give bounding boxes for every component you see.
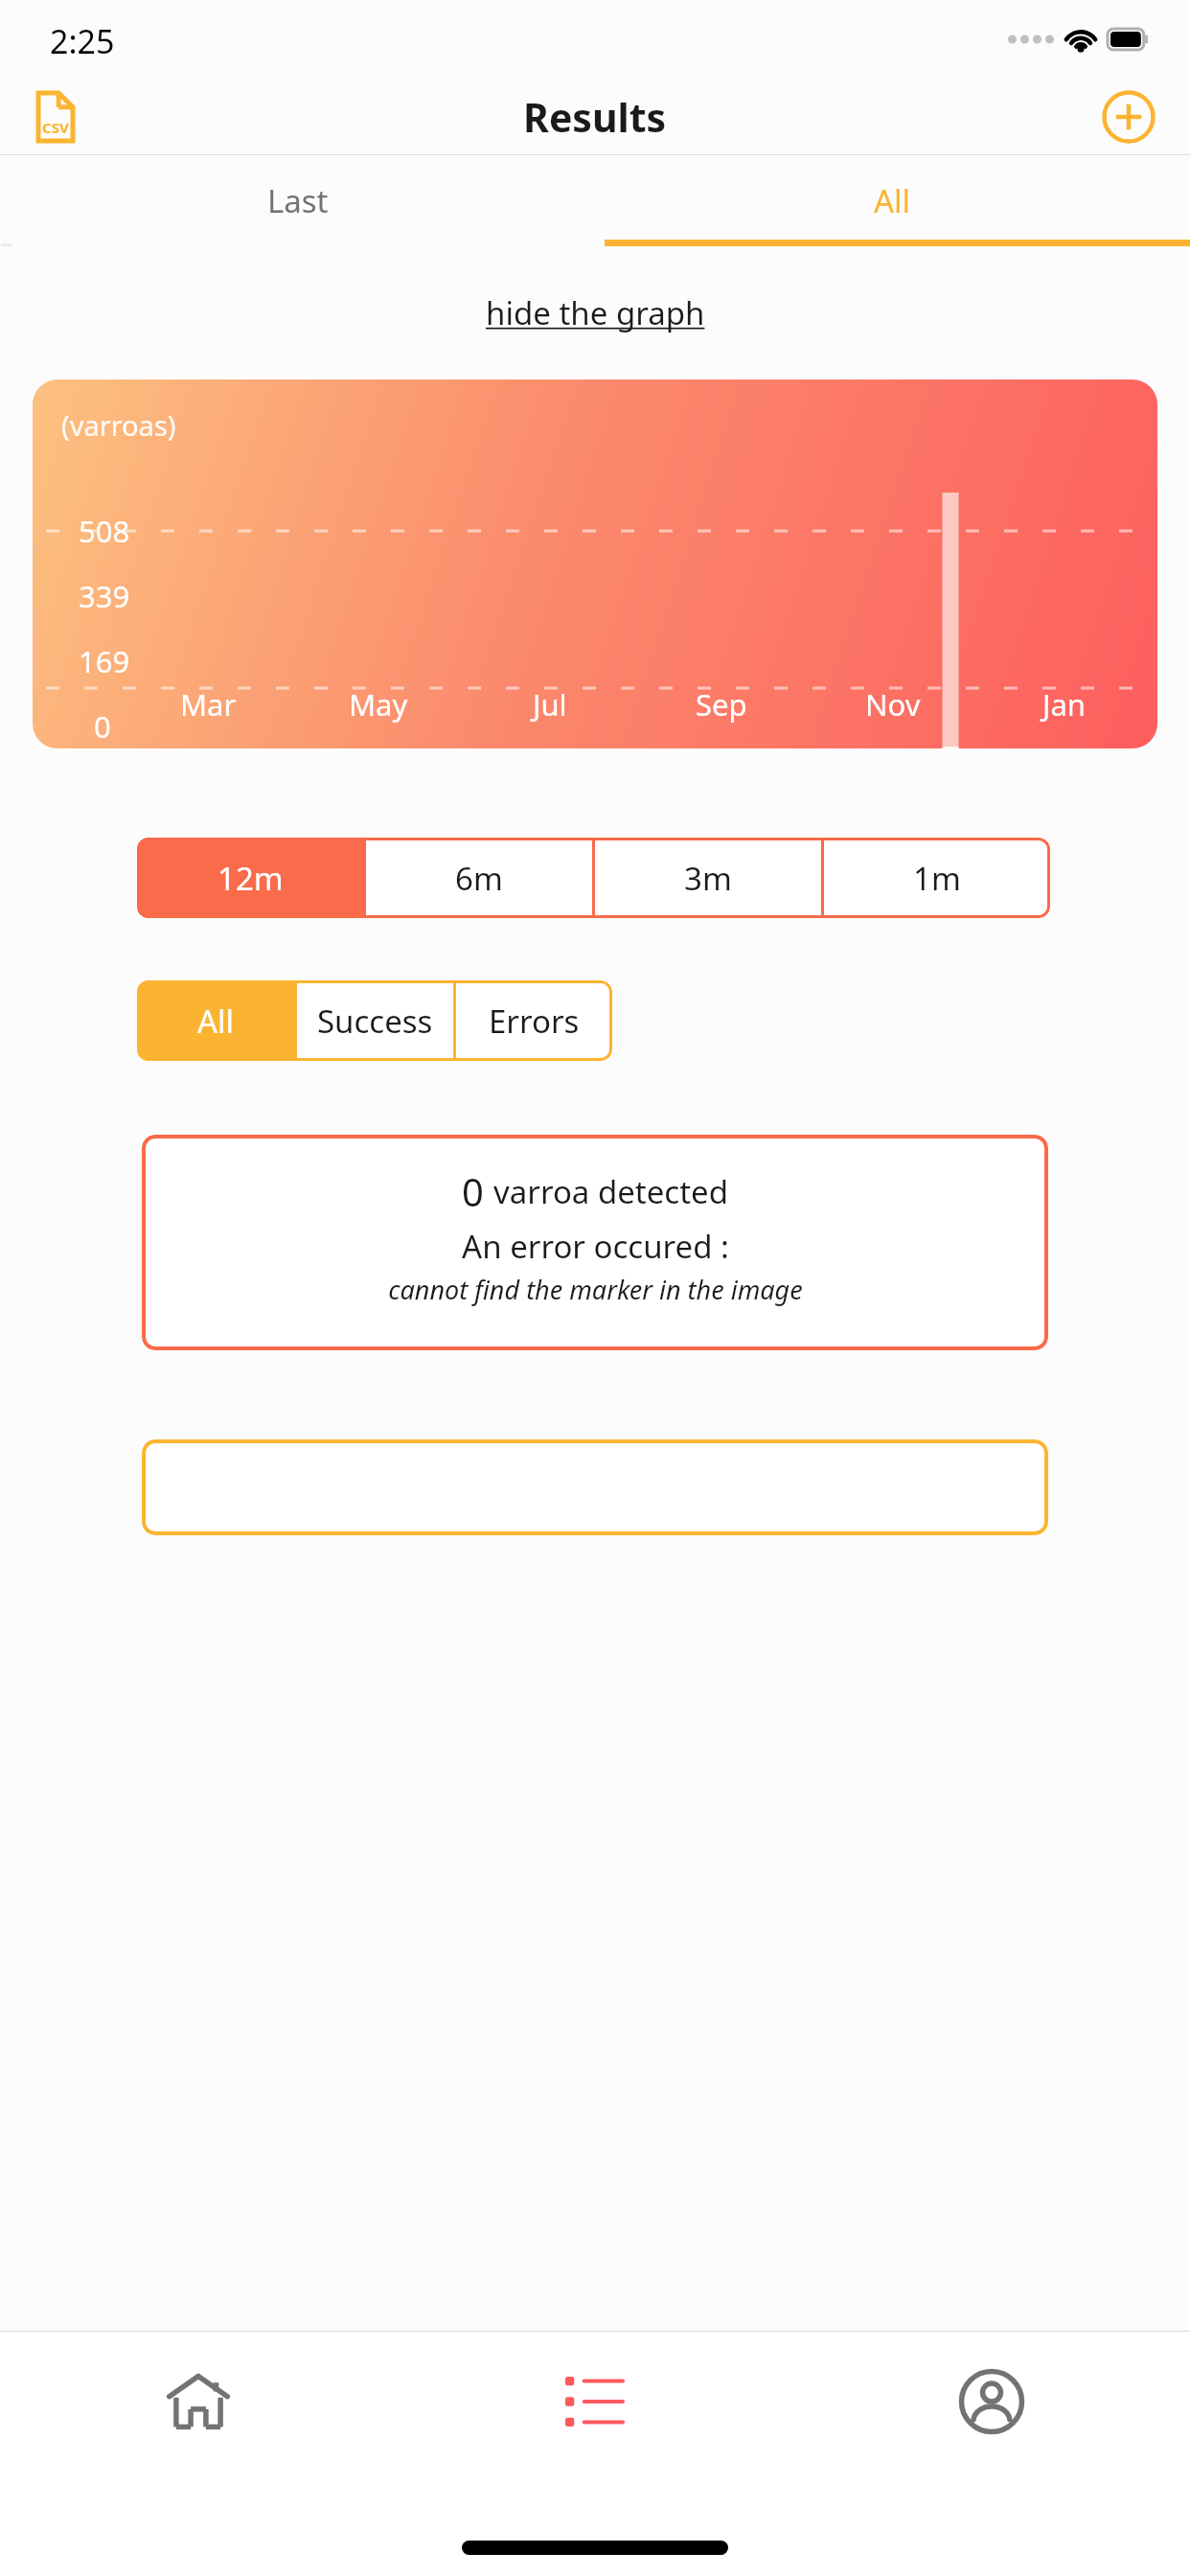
staticText: 508 — [79, 511, 130, 551]
button[interactable]: Add — [1094, 82, 1163, 151]
staticText: All — [197, 1000, 235, 1043]
staticText: hide the graph — [486, 291, 705, 334]
staticText: cannot find the marker in the image — [388, 1272, 803, 1307]
staticText: An error occured : — [462, 1225, 729, 1268]
staticText: Success — [317, 1000, 433, 1043]
button[interactable]: All — [595, 155, 1190, 246]
button[interactable]: Success — [297, 980, 453, 1061]
staticText: Nov — [865, 684, 921, 724]
button[interactable]: 12m — [137, 838, 363, 918]
staticText: Last — [267, 179, 329, 222]
staticText: May — [349, 684, 408, 724]
button[interactable]: Last — [0, 155, 595, 246]
button[interactable]: 0 — [142, 1135, 1048, 1350]
staticText: 2:25 — [50, 19, 115, 63]
button[interactable]: Home — [0, 2332, 397, 2471]
button[interactable]: 3m — [595, 838, 821, 918]
staticText: 1m — [913, 857, 961, 900]
button[interactable]: 6m — [366, 838, 592, 918]
staticText: 12/16/2019 — [641, 1344, 803, 1350]
staticText: (varroas) — [61, 406, 176, 444]
staticText: All — [874, 179, 911, 222]
button[interactable]: All — [137, 980, 294, 1061]
staticText: CSV — [42, 118, 69, 137]
staticText: 339 — [79, 576, 130, 616]
staticText: 3m — [684, 857, 732, 900]
staticText: 0 — [94, 706, 111, 747]
button[interactable]: Errors — [456, 980, 612, 1061]
staticText: 169 — [79, 641, 130, 681]
button[interactable]: Export CSV — [21, 82, 90, 151]
staticText: Sep — [696, 684, 747, 724]
button[interactable]: Results list — [397, 2332, 793, 2471]
staticText: 6m — [455, 857, 503, 900]
staticText: Jan — [1042, 684, 1087, 724]
staticText: Results — [523, 90, 667, 144]
button[interactable]: 1m — [824, 838, 1050, 918]
staticText: Photo taken on: — [388, 1344, 624, 1350]
staticText: varroa detected — [493, 1170, 729, 1213]
staticText: 12m — [217, 857, 284, 900]
button[interactable] — [142, 1439, 1048, 1535]
staticText: Mar — [180, 684, 237, 724]
staticText: Errors — [489, 1000, 580, 1043]
button[interactable]: hide the graph — [0, 246, 1190, 379]
button[interactable]: Profile — [793, 2332, 1190, 2471]
staticText: 0 — [462, 1165, 484, 1217]
staticText: Jul — [533, 684, 567, 724]
